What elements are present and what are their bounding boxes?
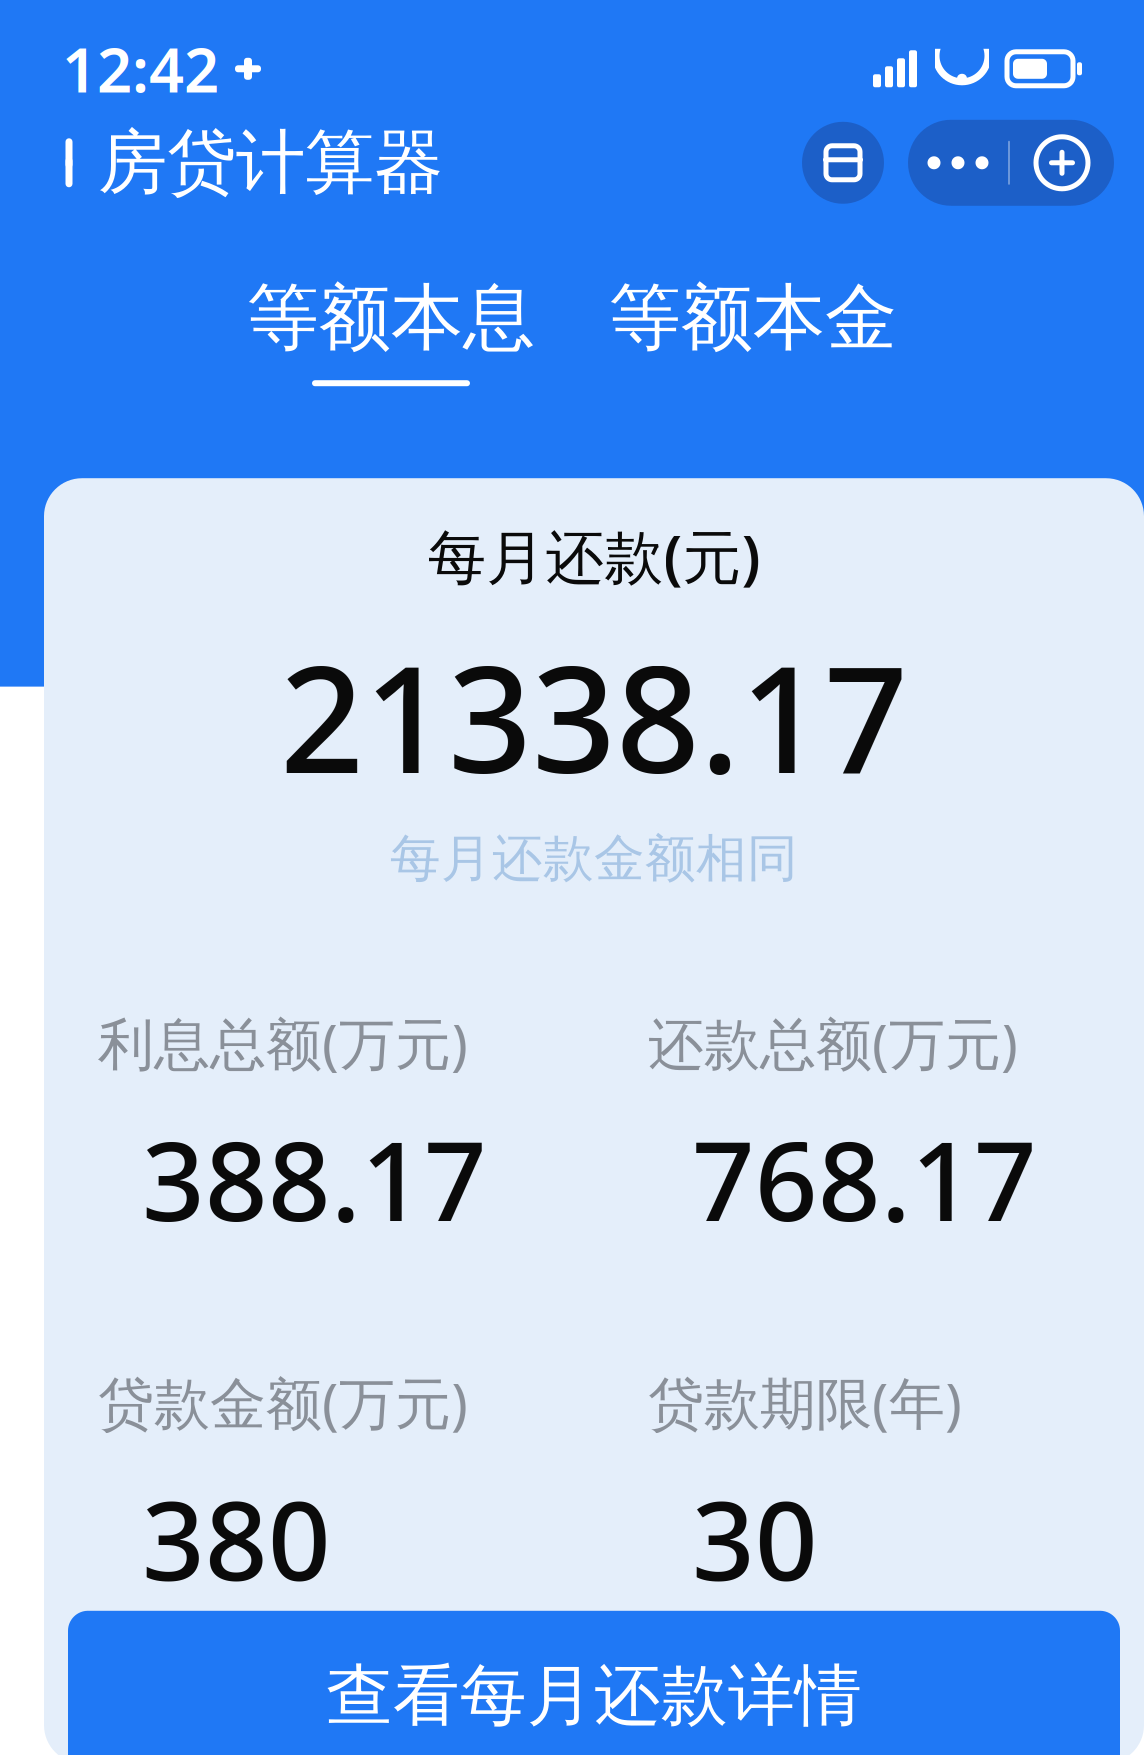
staticText: 查看每月还款详情 xyxy=(326,1655,862,1737)
staticText: 利息总额(万元) xyxy=(98,1006,468,1080)
staticText: 12:42 xyxy=(62,28,219,109)
staticText: 房贷计算器 xyxy=(98,120,443,205)
staticText: 等额本金 xyxy=(609,274,897,362)
button[interactable]: 查看每月还款详情 xyxy=(68,1611,1120,1755)
button[interactable]: 房贷计算器 xyxy=(56,106,461,219)
staticText: 768.17 xyxy=(692,1106,1037,1251)
button[interactable]: 收藏 xyxy=(802,122,884,204)
staticText: 贷款期限(年) xyxy=(648,1365,962,1440)
staticText: 还款总额(万元) xyxy=(648,1006,1018,1080)
button[interactable]: 更多 xyxy=(908,120,1008,206)
staticText: 等额本息 xyxy=(247,274,535,362)
button[interactable]: 等额本金 xyxy=(603,274,903,386)
staticText: 388.17 xyxy=(142,1106,487,1251)
button[interactable]: 关闭 xyxy=(1010,120,1114,206)
button[interactable]: 等额本息 xyxy=(241,274,541,386)
staticText: 21338.17 xyxy=(280,619,908,813)
staticText: 贷款金额(万元) xyxy=(98,1365,468,1440)
staticText: 380 xyxy=(142,1466,331,1611)
staticText: 每月还款(元) xyxy=(427,517,760,595)
staticText: 30 xyxy=(692,1466,818,1611)
staticText: 每月还款金额相同 xyxy=(390,827,798,890)
